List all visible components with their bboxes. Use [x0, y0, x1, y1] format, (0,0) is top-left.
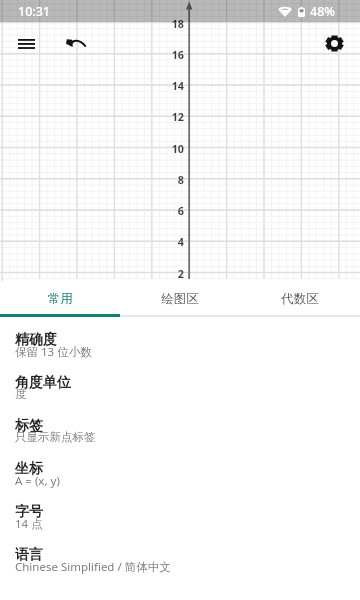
staticText: 字号	[15, 503, 43, 521]
staticText: 绘图区	[161, 291, 199, 307]
staticText: 标签	[15, 417, 43, 435]
button[interactable]: 语言	[0, 546, 360, 589]
staticText: 10	[163, 141, 184, 156]
staticText: 2	[163, 266, 184, 281]
staticText: 精确度	[15, 331, 57, 349]
staticText: 18	[163, 16, 184, 31]
staticText: A = (x, y)	[15, 473, 60, 489]
staticText: 坐标	[15, 460, 43, 478]
staticText: 保留 13 位小数	[15, 344, 92, 360]
staticText: 4	[163, 234, 184, 249]
button[interactable]: 角度单位	[0, 374, 360, 417]
staticText: 常用	[48, 291, 73, 307]
button[interactable]: 字号	[0, 503, 360, 546]
button[interactable]: 坐标	[0, 460, 360, 503]
staticText: 48%	[310, 3, 335, 20]
staticText: 12	[163, 109, 184, 124]
staticText: 14	[163, 78, 184, 93]
button[interactable]: Settings	[316, 25, 352, 61]
staticText: 只显示新点标签	[15, 430, 96, 444]
staticText: 角度单位	[15, 374, 71, 392]
staticText: 度	[15, 387, 27, 401]
staticText: 14 点	[15, 516, 43, 532]
staticText: Chinese Simplified / 简体中文	[15, 559, 171, 575]
button[interactable]: 精确度	[0, 331, 360, 374]
staticText: 16	[163, 47, 184, 62]
staticText: 语言	[15, 546, 43, 564]
button[interactable]: 常用	[0, 279, 120, 317]
button[interactable]: 代数区	[240, 279, 360, 317]
staticText: 6	[163, 203, 184, 218]
staticText: 代数区	[281, 291, 319, 307]
button[interactable]: 标签	[0, 417, 360, 460]
button[interactable]: Undo	[58, 25, 94, 61]
staticText: 10:31	[18, 3, 51, 20]
button[interactable]: 绘图区	[120, 279, 240, 317]
staticText: 8	[163, 172, 184, 187]
button[interactable]: Menu	[8, 26, 44, 62]
